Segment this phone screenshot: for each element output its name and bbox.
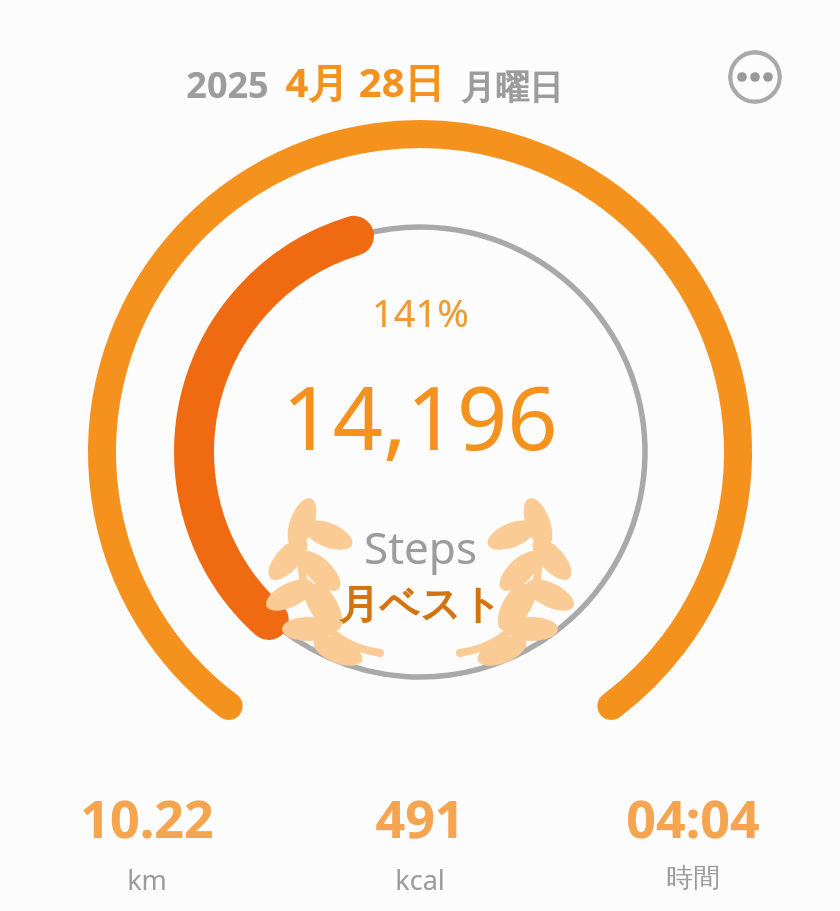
button[interactable]: 04:04 [616,782,770,895]
button[interactable]: 491 [365,782,475,898]
staticText: 月ベスト [339,579,502,629]
staticText: km [127,861,167,898]
button[interactable]: More options [728,50,782,104]
button[interactable]: 10.22 [70,782,224,898]
staticText: kcal [395,861,445,898]
staticText: 2025 [186,60,269,109]
staticText: 月曜日 [461,66,563,109]
staticText: 14,196 [282,356,558,476]
staticText: 時間 [666,861,720,895]
staticText: 04:04 [626,782,760,853]
staticText: Steps [364,517,477,577]
staticText: 141% [372,286,469,338]
staticText: 491 [375,782,465,853]
staticText: 10.22 [80,782,214,853]
staticText: 4月 28日 [285,54,445,109]
button[interactable] [0,0,840,911]
